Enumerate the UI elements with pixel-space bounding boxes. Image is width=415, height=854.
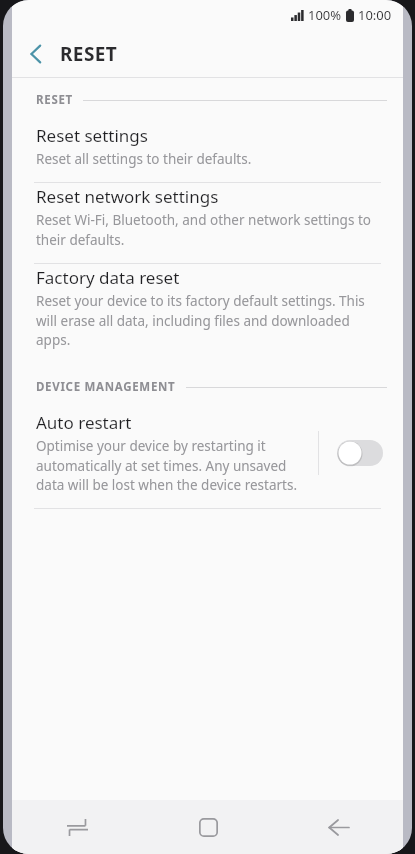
- button[interactable]: Reset network settings: [12, 183, 403, 263]
- staticText: Factory data reset: [36, 266, 180, 289]
- staticText: Reset your device to its factory default…: [36, 292, 381, 349]
- button[interactable]: Auto restart toggle: [333, 436, 387, 470]
- staticText: 100%: [308, 6, 342, 24]
- staticText: RESET: [36, 92, 73, 108]
- staticText: Reset Wi-Fi, Bluetooth, and other networ…: [36, 211, 381, 249]
- button[interactable]: Auto restart: [12, 409, 403, 508]
- staticText: 10:00: [358, 6, 392, 24]
- button[interactable]: Recent apps: [12, 800, 143, 854]
- staticText: DEVICE MANAGEMENT: [36, 379, 176, 395]
- button[interactable]: Home: [143, 800, 273, 854]
- staticText: Optimise your device by restarting it au…: [36, 437, 306, 494]
- staticText: RESET: [60, 41, 118, 67]
- staticText: Reset network settings: [36, 185, 219, 208]
- staticText: Reset all settings to their defaults.: [36, 150, 252, 168]
- button[interactable]: Reset settings: [12, 122, 403, 182]
- staticText: Auto restart: [36, 411, 132, 434]
- button[interactable]: Back: [273, 800, 403, 854]
- button[interactable]: Back: [12, 30, 60, 77]
- staticText: Reset settings: [36, 124, 148, 147]
- button[interactable]: Factory data reset: [12, 264, 403, 363]
